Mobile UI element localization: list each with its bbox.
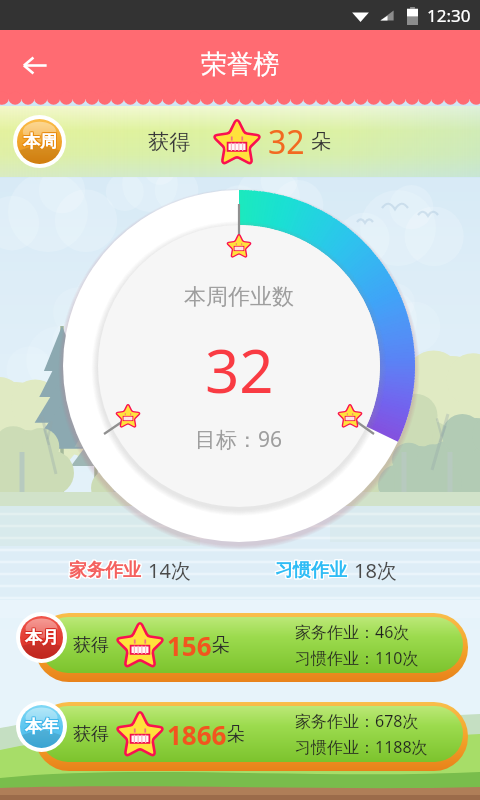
staticText: 本年 [26, 715, 60, 736]
staticText: 朵 [227, 723, 245, 746]
staticText: 本周 [24, 130, 58, 151]
staticText: 本周 [22, 130, 56, 151]
staticText: 本周 [23, 131, 57, 152]
staticText: 32 [205, 329, 274, 411]
staticText: 156 [167, 628, 212, 663]
staticText: 家务作业 [69, 559, 141, 582]
staticText: 本月 [24, 628, 58, 649]
button[interactable]: 本月 [20, 616, 63, 659]
button[interactable]: Back [12, 43, 56, 87]
staticText: 习惯作业 [274, 559, 346, 582]
staticText: 获得 [148, 129, 190, 155]
staticText: 本年 [24, 717, 58, 738]
staticText: 本年 [25, 716, 59, 737]
staticText: 习惯作业 [274, 560, 346, 583]
staticText: 家务作业 [68, 558, 140, 581]
staticText: 习惯作业 [276, 560, 348, 583]
staticText: 习惯作业 [276, 558, 348, 581]
staticText: 家务作业 [70, 560, 142, 583]
staticText: 习惯作业 [275, 559, 347, 582]
staticText: 14次 [148, 557, 191, 584]
staticText: 本月 [25, 627, 59, 648]
staticText: 习惯作业：110次 [295, 647, 419, 669]
staticText: 本年 [25, 715, 59, 736]
staticText: 家务作业 [69, 558, 141, 581]
staticText: 本月 [24, 626, 58, 647]
staticText: 本周 [23, 132, 57, 153]
staticText: 本月 [26, 627, 60, 648]
staticText: 获得 [73, 723, 109, 746]
staticText: 家务作业 [69, 560, 141, 583]
staticText: 家务作业 [70, 558, 142, 581]
staticText: 家务作业 [70, 559, 142, 582]
staticText: 本月 [26, 628, 60, 649]
staticText: 习惯作业 [274, 558, 346, 581]
staticText: 18次 [354, 557, 397, 584]
staticText: 本周 [22, 131, 56, 152]
staticText: 本周 [24, 132, 58, 153]
staticText: 朵 [212, 634, 230, 657]
staticText: 本周作业数 [184, 283, 294, 311]
staticText: 家务作业：46次 [295, 621, 410, 643]
staticText: 12:30 [427, 4, 471, 27]
staticText: 1866 [167, 717, 227, 752]
staticText: 获得 [73, 634, 109, 657]
staticText: 本周 [23, 130, 57, 151]
staticText: 习惯作业 [276, 559, 348, 582]
button[interactable]: 获得 [40, 706, 463, 762]
staticText: 本月 [25, 628, 59, 649]
staticText: 本年 [25, 717, 59, 738]
button[interactable]: 本周 [17, 119, 62, 164]
staticText: 习惯作业 [275, 560, 347, 583]
staticText: 朵 [311, 129, 331, 154]
staticText: 家务作业 [68, 559, 140, 582]
staticText: 目标：96 [195, 425, 283, 454]
staticText: 本月 [26, 626, 60, 647]
staticText: 本年 [24, 715, 58, 736]
button[interactable]: 获得 [40, 617, 463, 673]
staticText: 本月 [25, 626, 59, 647]
staticText: 本年 [24, 716, 58, 737]
staticText: 习惯作业 [275, 558, 347, 581]
staticText: 32 [268, 120, 305, 164]
staticText: 家务作业：678次 [295, 710, 419, 732]
staticText: 本年 [26, 716, 60, 737]
staticText: 荣誉榜 [201, 48, 279, 81]
staticText: 本周 [22, 132, 56, 153]
staticText: 本周 [24, 131, 58, 152]
staticText: 习惯作业：1188次 [295, 736, 428, 758]
staticText: 本月 [24, 627, 58, 648]
staticText: 家务作业 [68, 560, 140, 583]
button[interactable]: 本年 [20, 705, 63, 748]
staticText: 本年 [26, 717, 60, 738]
